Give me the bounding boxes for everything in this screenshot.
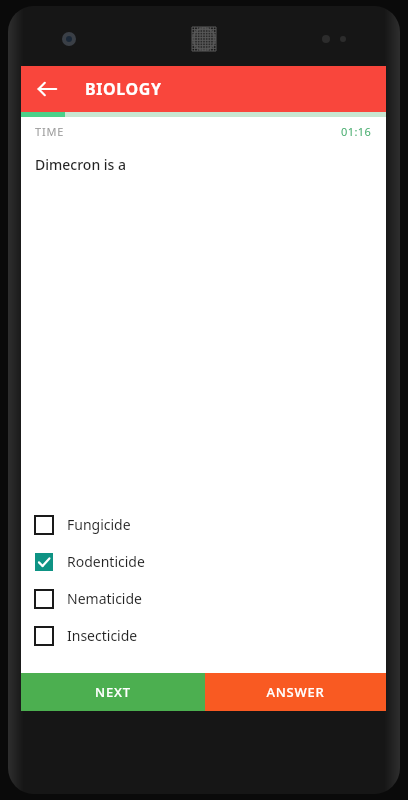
staticText: BIOLOGY xyxy=(85,78,162,100)
staticText: Fungicide xyxy=(67,515,131,534)
staticText: 01:16 xyxy=(341,124,372,139)
staticText: Nematicide xyxy=(67,589,142,608)
button[interactable]: NEXT xyxy=(21,673,205,711)
button[interactable]: Insecticide xyxy=(21,617,386,654)
staticText: Insecticide xyxy=(67,626,138,645)
staticText: ANSWER xyxy=(266,683,325,701)
button[interactable]: Fungicide xyxy=(21,506,386,543)
button[interactable]: Nematicide xyxy=(21,580,386,617)
staticText: TIME xyxy=(35,124,65,139)
button[interactable]: Back xyxy=(27,69,67,109)
button[interactable]: ANSWER xyxy=(205,673,386,711)
button[interactable]: Rodenticide xyxy=(21,543,386,580)
staticText: Rodenticide xyxy=(67,552,145,571)
staticText: Dimecron is a xyxy=(35,155,127,174)
staticText: NEXT xyxy=(95,683,131,701)
